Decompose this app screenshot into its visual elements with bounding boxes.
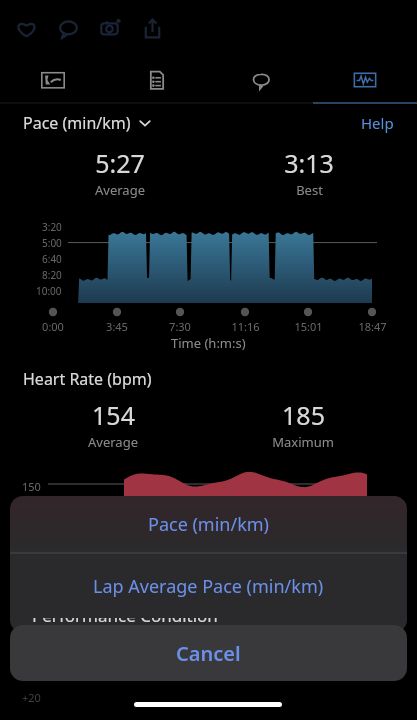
staticText: +20 [22,690,41,705]
staticText: 0:00 [42,319,64,334]
staticText: 3:13 [284,146,334,180]
staticText: Average [88,433,138,451]
button[interactable]: Like [12,14,40,42]
staticText: 11:16 [231,319,260,334]
staticText: 7:30 [169,319,191,334]
button[interactable]: Splits [209,56,313,104]
staticText: 6:40 [42,252,62,266]
staticText: Help [361,113,394,133]
button[interactable]: Pace (min/km) [10,496,407,553]
staticText: Best [296,181,323,199]
staticText: 154 [92,398,135,432]
staticText: Time (h:m:s) [171,334,246,352]
staticText: Lap Average Pace (min/km) [93,574,324,599]
button[interactable]: Cancel [10,625,407,681]
button[interactable]: Lap Average Pace (min/km) [10,554,407,618]
staticText: 3:45 [106,319,128,334]
staticText: 15:01 [294,319,323,334]
button[interactable]: Map [0,56,105,104]
button[interactable]: Charts [313,56,417,104]
button[interactable]: Laps [105,56,209,104]
staticText: Pace (min/km) [148,512,269,537]
staticText: Performance Condition [32,604,218,627]
staticText: Cancel [176,640,241,667]
staticText: 18:47 [358,319,387,334]
button[interactable]: Add photo [96,14,124,42]
staticText: 5:00 [42,236,62,250]
button[interactable]: Share [138,14,166,42]
button[interactable]: Pace (min/km) [23,112,394,134]
staticText: Maximum [272,433,334,451]
button[interactable]: Comment [54,14,82,42]
staticText: 5:27 [95,146,145,180]
staticText: Heart Rate (bpm) [23,368,152,390]
staticText: 8:20 [42,268,62,282]
staticText: 3:20 [42,220,62,234]
staticText: 185 [282,398,325,432]
staticText: 150 [22,479,41,494]
staticText: Pace (min/km) [23,112,131,134]
staticText: Average [95,181,145,199]
staticText: 10:00 [36,284,62,298]
button[interactable]: Help [361,113,394,133]
